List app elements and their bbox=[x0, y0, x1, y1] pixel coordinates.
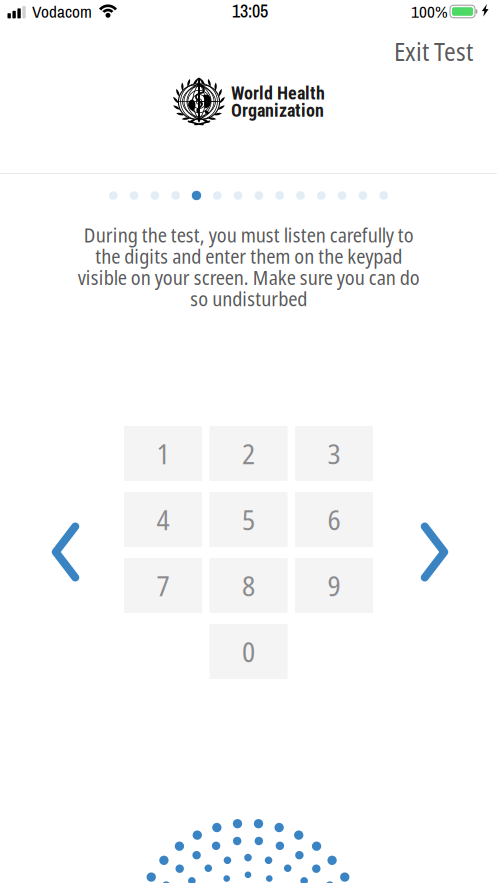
button[interactable]: Previous page bbox=[36, 512, 94, 592]
staticText: 7 bbox=[156, 566, 169, 604]
staticText: 9 bbox=[327, 566, 340, 604]
staticText: 8 bbox=[242, 566, 255, 604]
staticText: World Health bbox=[231, 84, 325, 102]
staticText: 0 bbox=[242, 632, 255, 670]
staticText: Organization bbox=[231, 101, 324, 120]
staticText: 2 bbox=[242, 434, 255, 472]
button[interactable]: 5 bbox=[209, 492, 287, 547]
staticText: 6 bbox=[327, 500, 340, 538]
staticText: 4 bbox=[156, 500, 169, 538]
staticText: Exit Test bbox=[394, 34, 473, 68]
staticText: 3 bbox=[327, 434, 340, 472]
staticText: Vodacom bbox=[32, 0, 92, 23]
button[interactable]: 3 bbox=[295, 426, 373, 481]
button[interactable]: Exit Test bbox=[380, 26, 487, 76]
button[interactable]: 0 bbox=[209, 624, 287, 679]
button[interactable]: 7 bbox=[124, 558, 202, 613]
staticText: During the test, you must listen careful… bbox=[77, 224, 419, 309]
staticText: 13:05 bbox=[232, 0, 268, 23]
staticText: 5 bbox=[242, 500, 255, 538]
button[interactable]: 2 bbox=[209, 426, 287, 481]
button[interactable]: 6 bbox=[295, 492, 373, 547]
button[interactable]: 9 bbox=[295, 558, 373, 613]
button[interactable]: Next page bbox=[405, 512, 463, 592]
staticText: 1 bbox=[156, 434, 169, 472]
button[interactable]: 4 bbox=[124, 492, 202, 547]
staticText: 100% bbox=[411, 0, 448, 23]
button[interactable]: 8 bbox=[209, 558, 287, 613]
button[interactable]: 1 bbox=[124, 426, 202, 481]
